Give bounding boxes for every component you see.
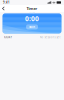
staticText: SESSION (29, 12, 35, 14)
staticText: 9:41 (3, 1, 10, 4)
staticText: Timer (26, 6, 37, 11)
staticText: Start (29, 25, 35, 29)
button[interactable]: Start (26, 24, 38, 29)
staticText: TODAY (3, 35, 12, 39)
button[interactable]: Back (0, 5, 6, 12)
staticText: No sessions yet (39, 35, 60, 39)
staticText: 0:00 (25, 14, 39, 23)
